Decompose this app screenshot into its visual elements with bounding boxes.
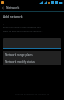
button[interactable]: Network modify status: [3, 58, 61, 65]
staticText: Network range plans: [5, 53, 33, 57]
button[interactable]: Network range plans: [3, 51, 61, 58]
staticText: Add network: [3, 15, 23, 19]
staticText: i: [3, 22, 4, 25]
staticText: Network: [6, 6, 20, 10]
staticText: Enter the name of the network you want t…: [3, 26, 43, 32]
staticText: Network modify status: [5, 60, 35, 64]
button[interactable]: Back: [0, 5, 6, 11]
staticText: Choose a network to connect to: [15, 93, 50, 96]
